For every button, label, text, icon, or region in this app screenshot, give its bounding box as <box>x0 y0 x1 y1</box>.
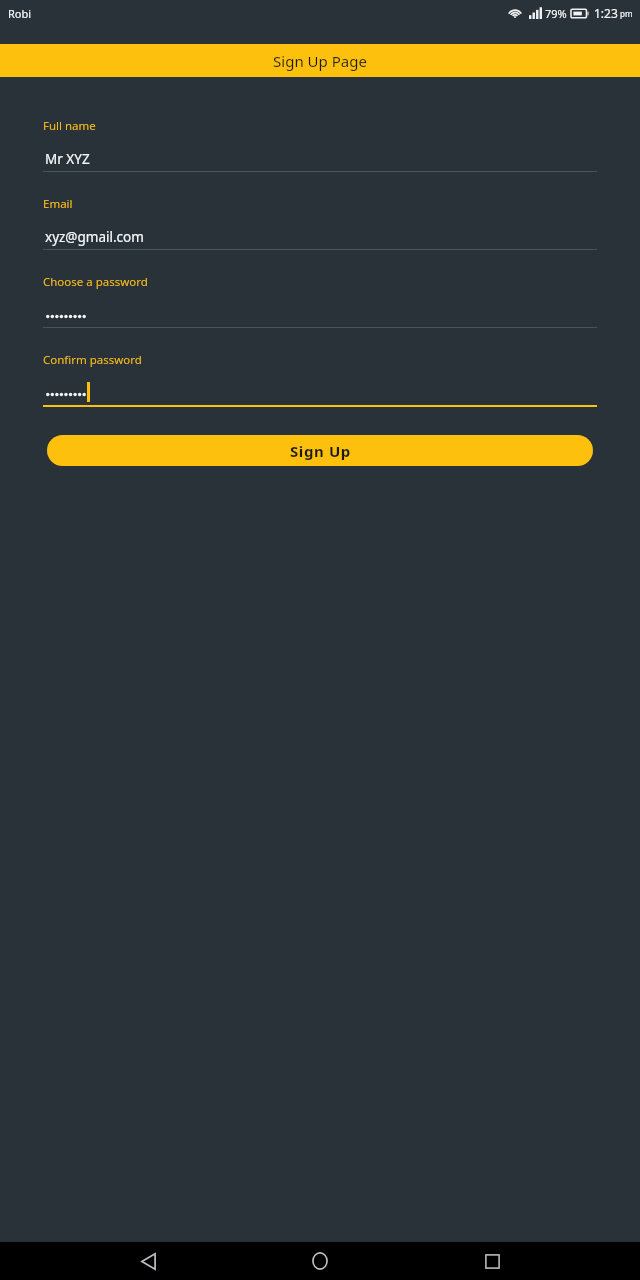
staticText: Sign Up <box>290 441 351 461</box>
staticText: Email <box>43 196 73 212</box>
button[interactable]: Confirm password <box>43 352 597 407</box>
button[interactable]: Choose a password <box>43 274 597 328</box>
staticText: Robi <box>8 6 32 21</box>
staticText: 1:23 <box>594 5 618 21</box>
staticText: Full name <box>43 118 96 134</box>
staticText: xyz@gmail.com <box>45 228 144 246</box>
staticText: Sign Up Page <box>273 51 367 71</box>
button[interactable]: Back <box>124 1242 172 1280</box>
button[interactable]: Home <box>296 1242 344 1280</box>
staticText: 79% <box>545 6 567 21</box>
staticText: pm <box>620 8 633 19</box>
button[interactable]: Recent apps <box>468 1242 516 1280</box>
staticText: Choose a password <box>43 274 148 290</box>
staticText: Mr XYZ <box>45 150 90 168</box>
button[interactable]: Email <box>43 196 597 250</box>
button[interactable]: Sign Up <box>47 435 593 466</box>
staticText: Confirm password <box>43 352 142 368</box>
button[interactable]: Full name <box>43 118 597 172</box>
